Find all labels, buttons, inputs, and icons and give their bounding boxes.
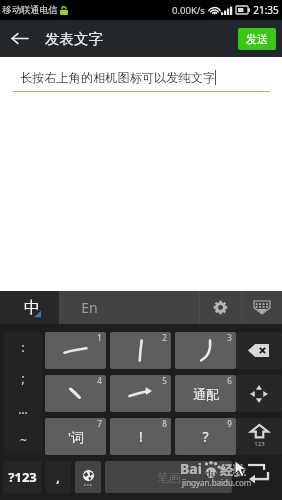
staticText: … <box>18 401 28 417</box>
staticText: 1 <box>97 332 102 343</box>
staticText: 8 <box>162 418 167 429</box>
button[interactable]: Enter <box>236 461 282 493</box>
staticText: '词 <box>68 428 84 446</box>
button[interactable]: ?123 <box>3 461 42 493</box>
staticText: ; <box>21 370 25 386</box>
staticText: 2 <box>162 332 167 343</box>
button[interactable]: Shift to numbers <box>236 418 282 455</box>
staticText: jingyan.baidu.com <box>182 477 252 488</box>
staticText: 移动联通电信 <box>2 4 58 16</box>
staticText: ~ <box>20 432 27 448</box>
staticText: 6 <box>227 375 232 386</box>
staticText: 长按右上角的相机图标可以发纯文字 <box>20 70 215 85</box>
button[interactable]: Back <box>0 20 40 57</box>
button[interactable]: Switch input language <box>75 461 101 493</box>
staticText: : <box>21 339 25 355</box>
button[interactable]: '词 <box>45 418 106 455</box>
button[interactable]: 发送 <box>238 28 276 50</box>
button[interactable]: 5 <box>110 375 171 412</box>
button[interactable]: Backspace <box>236 332 282 369</box>
staticText: ! <box>139 427 143 446</box>
staticText: 中 <box>24 298 40 318</box>
staticText: 笔画 <box>157 470 181 485</box>
button[interactable]: : <box>4 332 42 362</box>
staticText: 3 <box>227 332 232 343</box>
staticText: Bai <box>180 459 202 478</box>
staticText: 发表文字 <box>45 30 103 48</box>
button[interactable]: 笔画 <box>105 461 232 493</box>
staticText: ?123 <box>8 468 37 486</box>
staticText: 21:35 <box>253 3 279 17</box>
button[interactable]: ! <box>110 418 171 455</box>
staticText: 4 <box>97 375 102 386</box>
button[interactable]: 中 <box>0 291 59 324</box>
button[interactable]: ~ <box>4 424 42 455</box>
button[interactable]: 通配 <box>175 375 236 412</box>
button[interactable]: 2 <box>110 332 171 369</box>
button[interactable]: , <box>45 461 71 493</box>
staticText: ? <box>202 427 209 446</box>
staticText: 通配 <box>193 386 219 402</box>
staticText: , <box>56 469 60 485</box>
button[interactable]: Hide keyboard <box>242 291 282 324</box>
button[interactable]: Move cursor <box>236 375 282 412</box>
staticText: 9 <box>227 418 232 429</box>
button[interactable]: … <box>4 393 42 424</box>
button[interactable]: 1 <box>45 332 106 369</box>
staticText: 7 <box>97 418 102 429</box>
button[interactable]: 4 <box>45 375 106 412</box>
staticText: 经验 <box>220 462 246 478</box>
button[interactable]: 3 <box>175 332 236 369</box>
staticText: 5 <box>162 375 167 386</box>
staticText: 123 <box>254 440 265 448</box>
button[interactable]: Settings <box>200 291 241 324</box>
button[interactable]: ; <box>4 362 42 393</box>
staticText: En <box>81 298 98 317</box>
staticText: 0.00K/s <box>172 4 205 17</box>
staticText: 发送 <box>246 32 268 46</box>
staticText: du <box>205 467 217 479</box>
button[interactable]: ? <box>175 418 236 455</box>
button[interactable]: En <box>59 291 119 324</box>
